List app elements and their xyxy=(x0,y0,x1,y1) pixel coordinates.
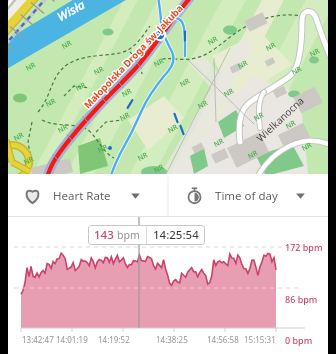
staticText: Małopolska Droga św. Jakuba xyxy=(81,2,186,111)
staticText: NR xyxy=(120,86,134,100)
staticText: 14:56:58 xyxy=(207,334,239,345)
staticText: Małopolska Droga św. Jakuba xyxy=(81,0,186,110)
staticText: NR xyxy=(118,110,132,124)
staticText: NR xyxy=(300,140,314,154)
staticText: NR xyxy=(152,162,166,176)
staticText: Time of day xyxy=(215,188,278,204)
staticText: NR xyxy=(196,98,210,112)
staticText: NR xyxy=(96,142,110,156)
staticText: NR xyxy=(44,96,58,110)
staticText: NR xyxy=(308,46,322,60)
staticText: NR xyxy=(56,122,70,136)
staticText: NR xyxy=(236,58,250,72)
button[interactable]: Time of day xyxy=(168,174,328,217)
staticText: NR xyxy=(284,118,298,132)
staticText: NR xyxy=(92,64,106,78)
staticText: NR xyxy=(166,122,180,136)
staticText: NR xyxy=(222,86,236,100)
staticText: Heart Rate xyxy=(53,188,111,204)
button[interactable]: 143 xyxy=(88,225,205,245)
staticText: NR xyxy=(60,38,74,52)
staticText: 86 bpm xyxy=(285,293,318,305)
staticText: Małopolska Droga św. Jakuba xyxy=(82,2,187,111)
staticText: Małopolska Droga św. Jakuba xyxy=(81,3,186,113)
staticText: NR xyxy=(206,34,220,48)
staticText: NR xyxy=(12,130,26,144)
staticText: bpm xyxy=(117,228,140,242)
staticText: 14:01:19 xyxy=(56,334,88,345)
staticText: 14:25:54 xyxy=(153,227,199,243)
staticText: NR xyxy=(178,76,192,90)
staticText: NR xyxy=(212,136,226,150)
staticText: Małopolska Droga św. Jakuba xyxy=(80,1,185,111)
staticText: NR xyxy=(152,56,166,70)
staticText: Wielkanocna xyxy=(253,93,307,145)
staticText: 15:15:31 xyxy=(244,334,276,345)
staticText: NR xyxy=(252,110,266,124)
button[interactable]: Heart Rate xyxy=(8,174,168,217)
staticText: NR xyxy=(290,64,304,78)
staticText: NR xyxy=(264,40,278,54)
staticText: Wisła xyxy=(54,0,88,24)
staticText: Małopolska Droga św. Jakuba xyxy=(80,2,185,112)
staticText: 14:38:25 xyxy=(156,334,188,345)
staticText: NR xyxy=(246,148,260,162)
staticText: NR xyxy=(24,60,38,74)
staticText: Małopolska Droga św. Jakuba xyxy=(82,1,187,111)
staticText: NR xyxy=(22,154,36,168)
staticText: NR xyxy=(136,150,150,164)
staticText: 13:42:47 xyxy=(22,334,54,345)
staticText: 172 bpm xyxy=(285,241,323,253)
staticText: 0 bpm xyxy=(285,334,313,346)
staticText: 143 xyxy=(94,227,114,243)
staticText: 14:19:52 xyxy=(98,334,130,345)
staticText: Małopolska Droga św. Jakuba xyxy=(79,2,185,111)
staticText: Małopolska Droga św. Jakuba xyxy=(82,2,187,112)
staticText: NR xyxy=(74,80,88,94)
